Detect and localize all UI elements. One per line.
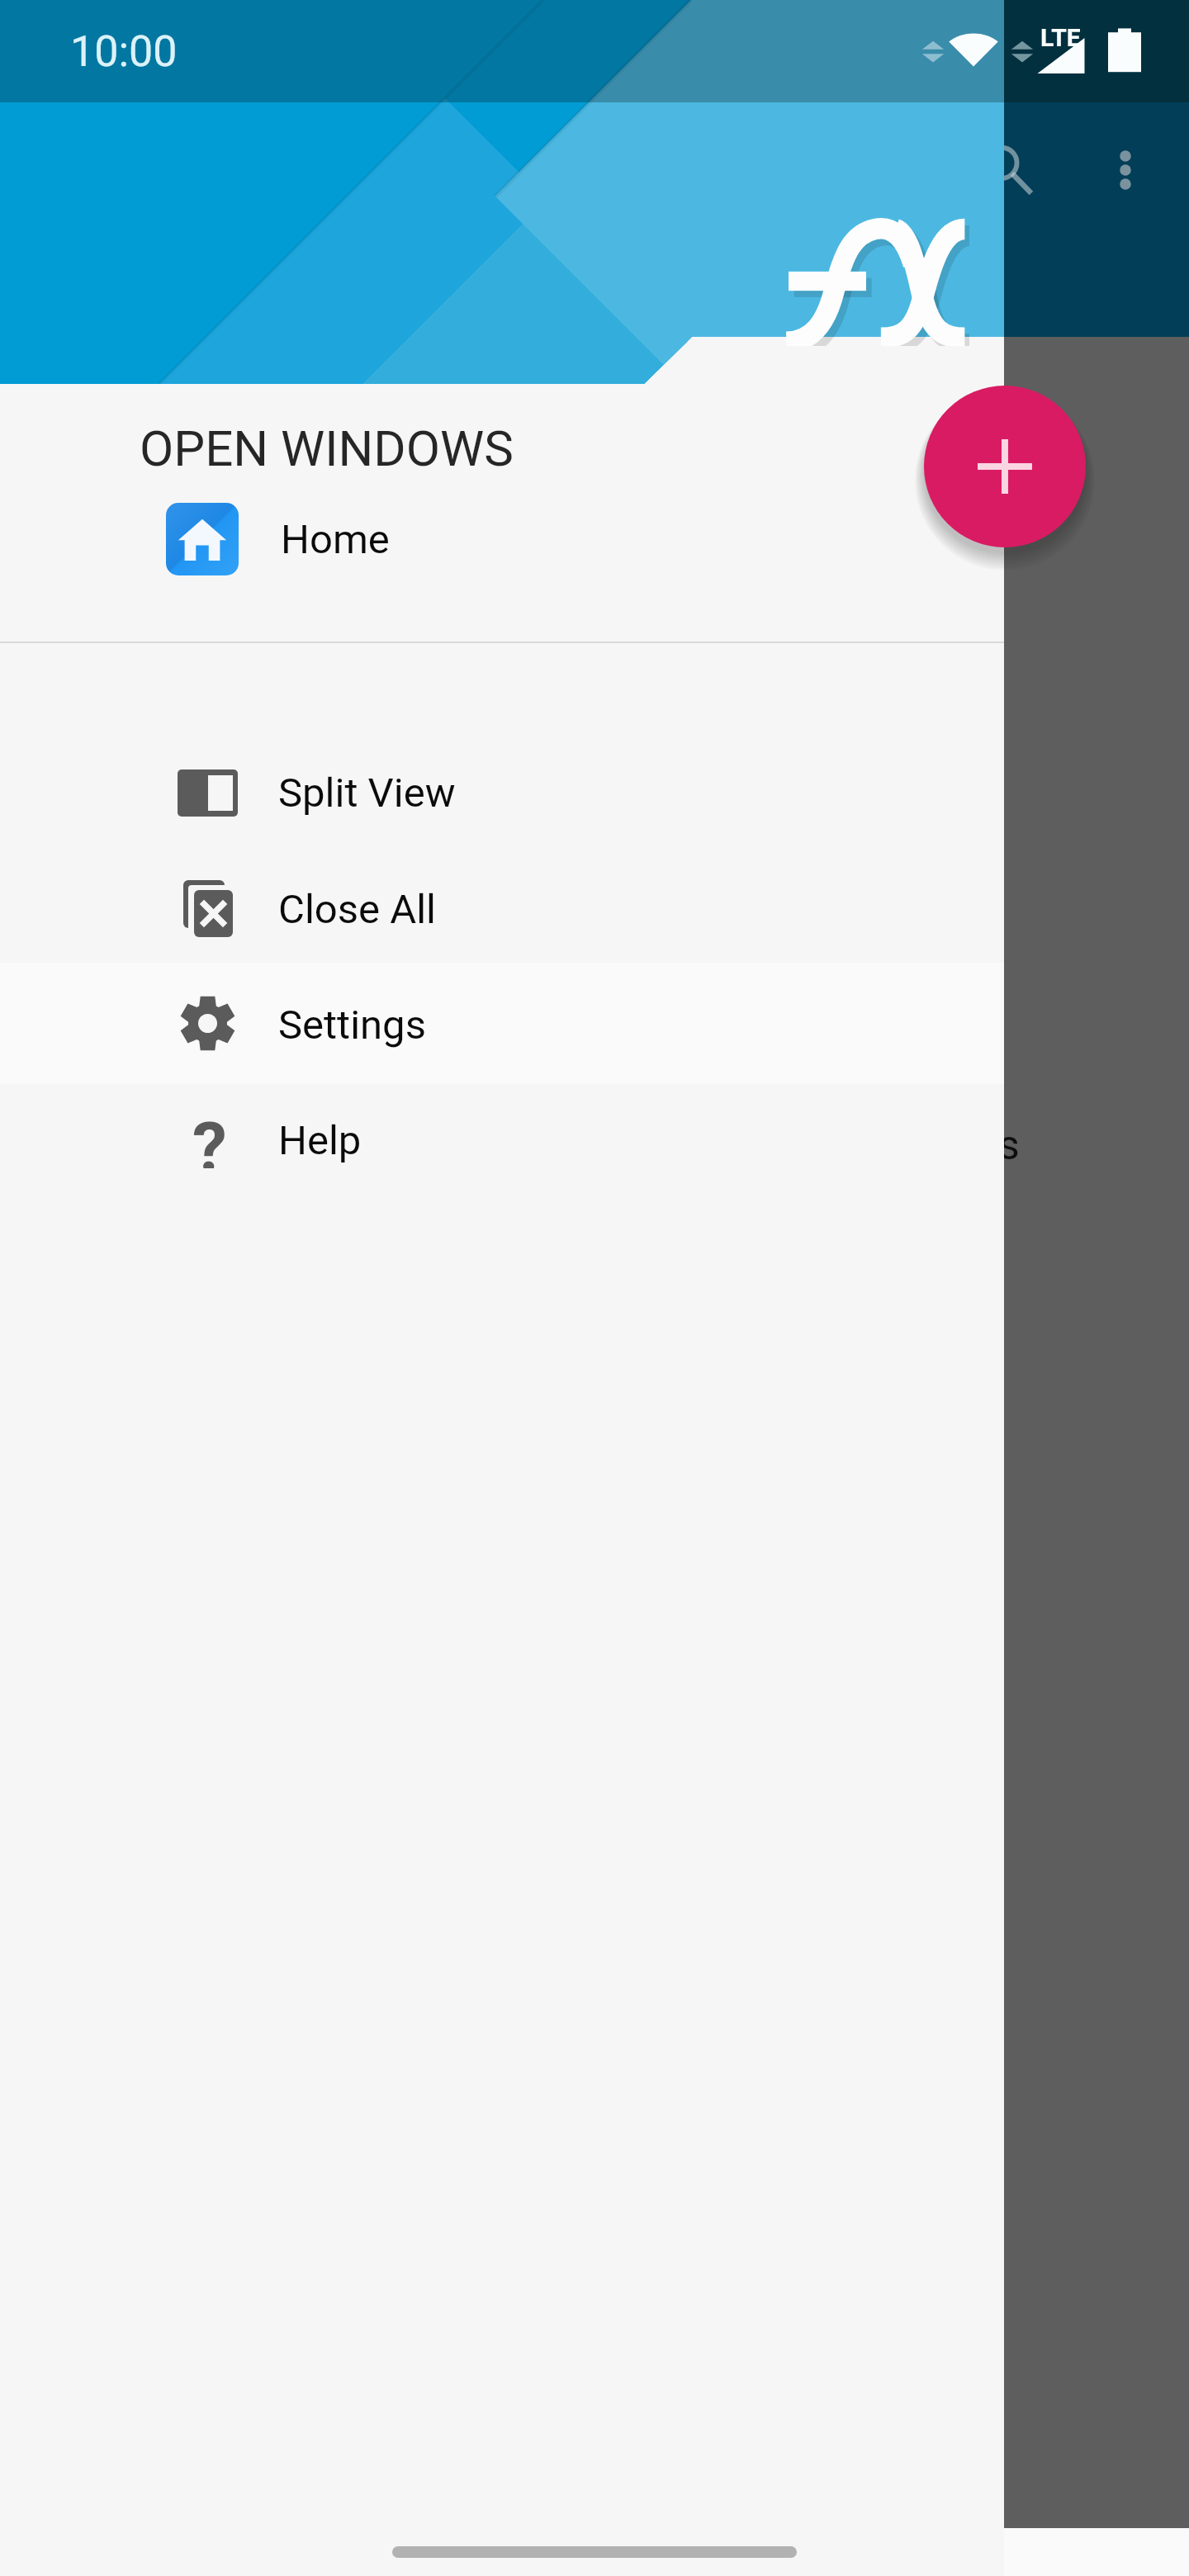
button[interactable]: Settings: [0, 967, 1004, 1082]
button[interactable]: More options: [1078, 122, 1173, 218]
button[interactable]: Home: [0, 485, 1004, 593]
staticText: Home: [281, 516, 390, 563]
button[interactable]: ?: [0, 1082, 1004, 1198]
staticText: 10:00: [70, 26, 178, 77]
staticText: ?: [192, 1107, 227, 1168]
staticText: s: [998, 1121, 1020, 1170]
staticText: LTE: [1040, 23, 1081, 52]
button[interactable]: Close All: [0, 851, 1004, 967]
staticText: Split View: [278, 769, 456, 817]
button[interactable]: Search: [960, 122, 1056, 218]
staticText: OPEN WINDOWS: [140, 419, 514, 477]
button[interactable]: Split View: [0, 735, 1004, 850]
staticText: Close All: [278, 886, 436, 933]
button[interactable]: Add: [924, 386, 1086, 547]
staticText: Help: [278, 1117, 362, 1164]
staticText: Settings: [278, 1002, 426, 1049]
